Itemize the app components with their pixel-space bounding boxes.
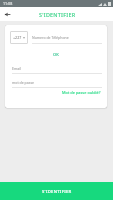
staticText: S'IDENTIFIER: [42, 189, 72, 195]
staticText: +227: [13, 35, 22, 40]
button[interactable]: Back: [3, 10, 11, 18]
staticText: S'IDENTIFIER: [39, 11, 76, 18]
button[interactable]: Mot de passe oublié?: [61, 89, 102, 96]
button[interactable]: S'IDENTIFIER: [0, 182, 113, 200]
staticText: mot de passe: [12, 80, 35, 85]
staticText: Mot de passe oublié?: [62, 90, 101, 95]
staticText: Email: [12, 66, 21, 71]
button[interactable]: OK: [51, 51, 61, 58]
button[interactable]: +227: [10, 31, 28, 44]
staticText: Numero de Téléphone: [32, 35, 69, 40]
staticText: 11:08: [3, 1, 13, 6]
staticText: OK: [53, 52, 59, 57]
